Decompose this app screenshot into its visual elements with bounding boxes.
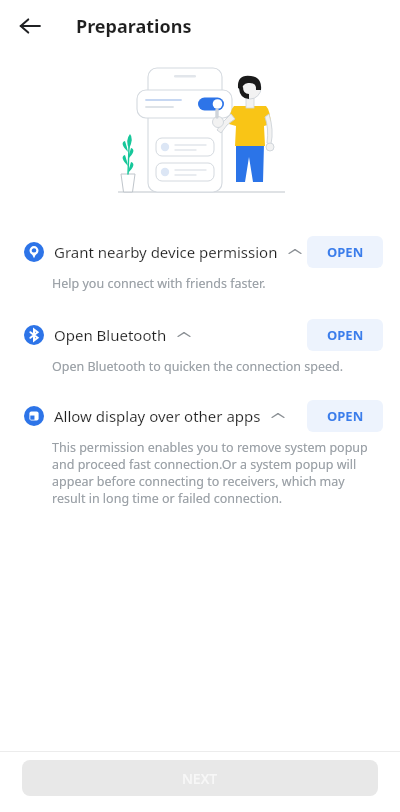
- staticText: Open Bluetooth to quicken the connection…: [52, 358, 344, 375]
- button[interactable]: OPEN: [307, 236, 383, 268]
- staticText: Open Bluetooth: [54, 325, 167, 345]
- button[interactable]: Collapse: [286, 243, 304, 261]
- staticText: Preparations: [76, 14, 192, 39]
- staticText: Grant nearby device permission: [54, 242, 278, 262]
- staticText: NEXT: [182, 769, 218, 788]
- button[interactable]: Collapse: [269, 407, 287, 425]
- staticText: OPEN: [327, 407, 364, 425]
- button[interactable]: Collapse: [175, 326, 193, 344]
- button[interactable]: OPEN: [307, 400, 383, 432]
- staticText: OPEN: [327, 243, 364, 261]
- staticText: OPEN: [327, 326, 364, 344]
- staticText: Help you connect with friends faster.: [52, 275, 266, 292]
- staticText: This permission enables you to remove sy…: [52, 439, 372, 507]
- staticText: Allow display over other apps: [54, 406, 261, 426]
- button[interactable]: OPEN: [307, 319, 383, 351]
- button[interactable]: Back: [10, 6, 50, 46]
